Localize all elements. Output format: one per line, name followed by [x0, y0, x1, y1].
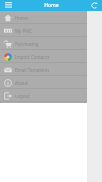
- button[interactable]: My PMC: [0, 24, 87, 37]
- staticText: Home: [15, 15, 28, 21]
- staticText: Purchasing: [15, 41, 39, 47]
- staticText: About: [15, 80, 28, 86]
- button[interactable]: Import Contacts: [0, 50, 87, 63]
- staticText: Email Templates: [15, 67, 50, 73]
- staticText: Import Contacts: [15, 54, 50, 60]
- button[interactable]: Home: [0, 11, 87, 24]
- button[interactable]: Refresh: [89, 0, 100, 11]
- button[interactable]: Purchasing: [0, 37, 87, 50]
- staticText: Home: [44, 2, 59, 9]
- staticText: Logout: [15, 93, 30, 99]
- button[interactable]: About: [0, 76, 87, 89]
- button[interactable]: Open navigation menu: [3, 0, 14, 11]
- button[interactable]: Email Templates: [0, 63, 87, 76]
- button[interactable]: Logout: [0, 89, 87, 102]
- staticText: My PMC: [15, 28, 33, 34]
